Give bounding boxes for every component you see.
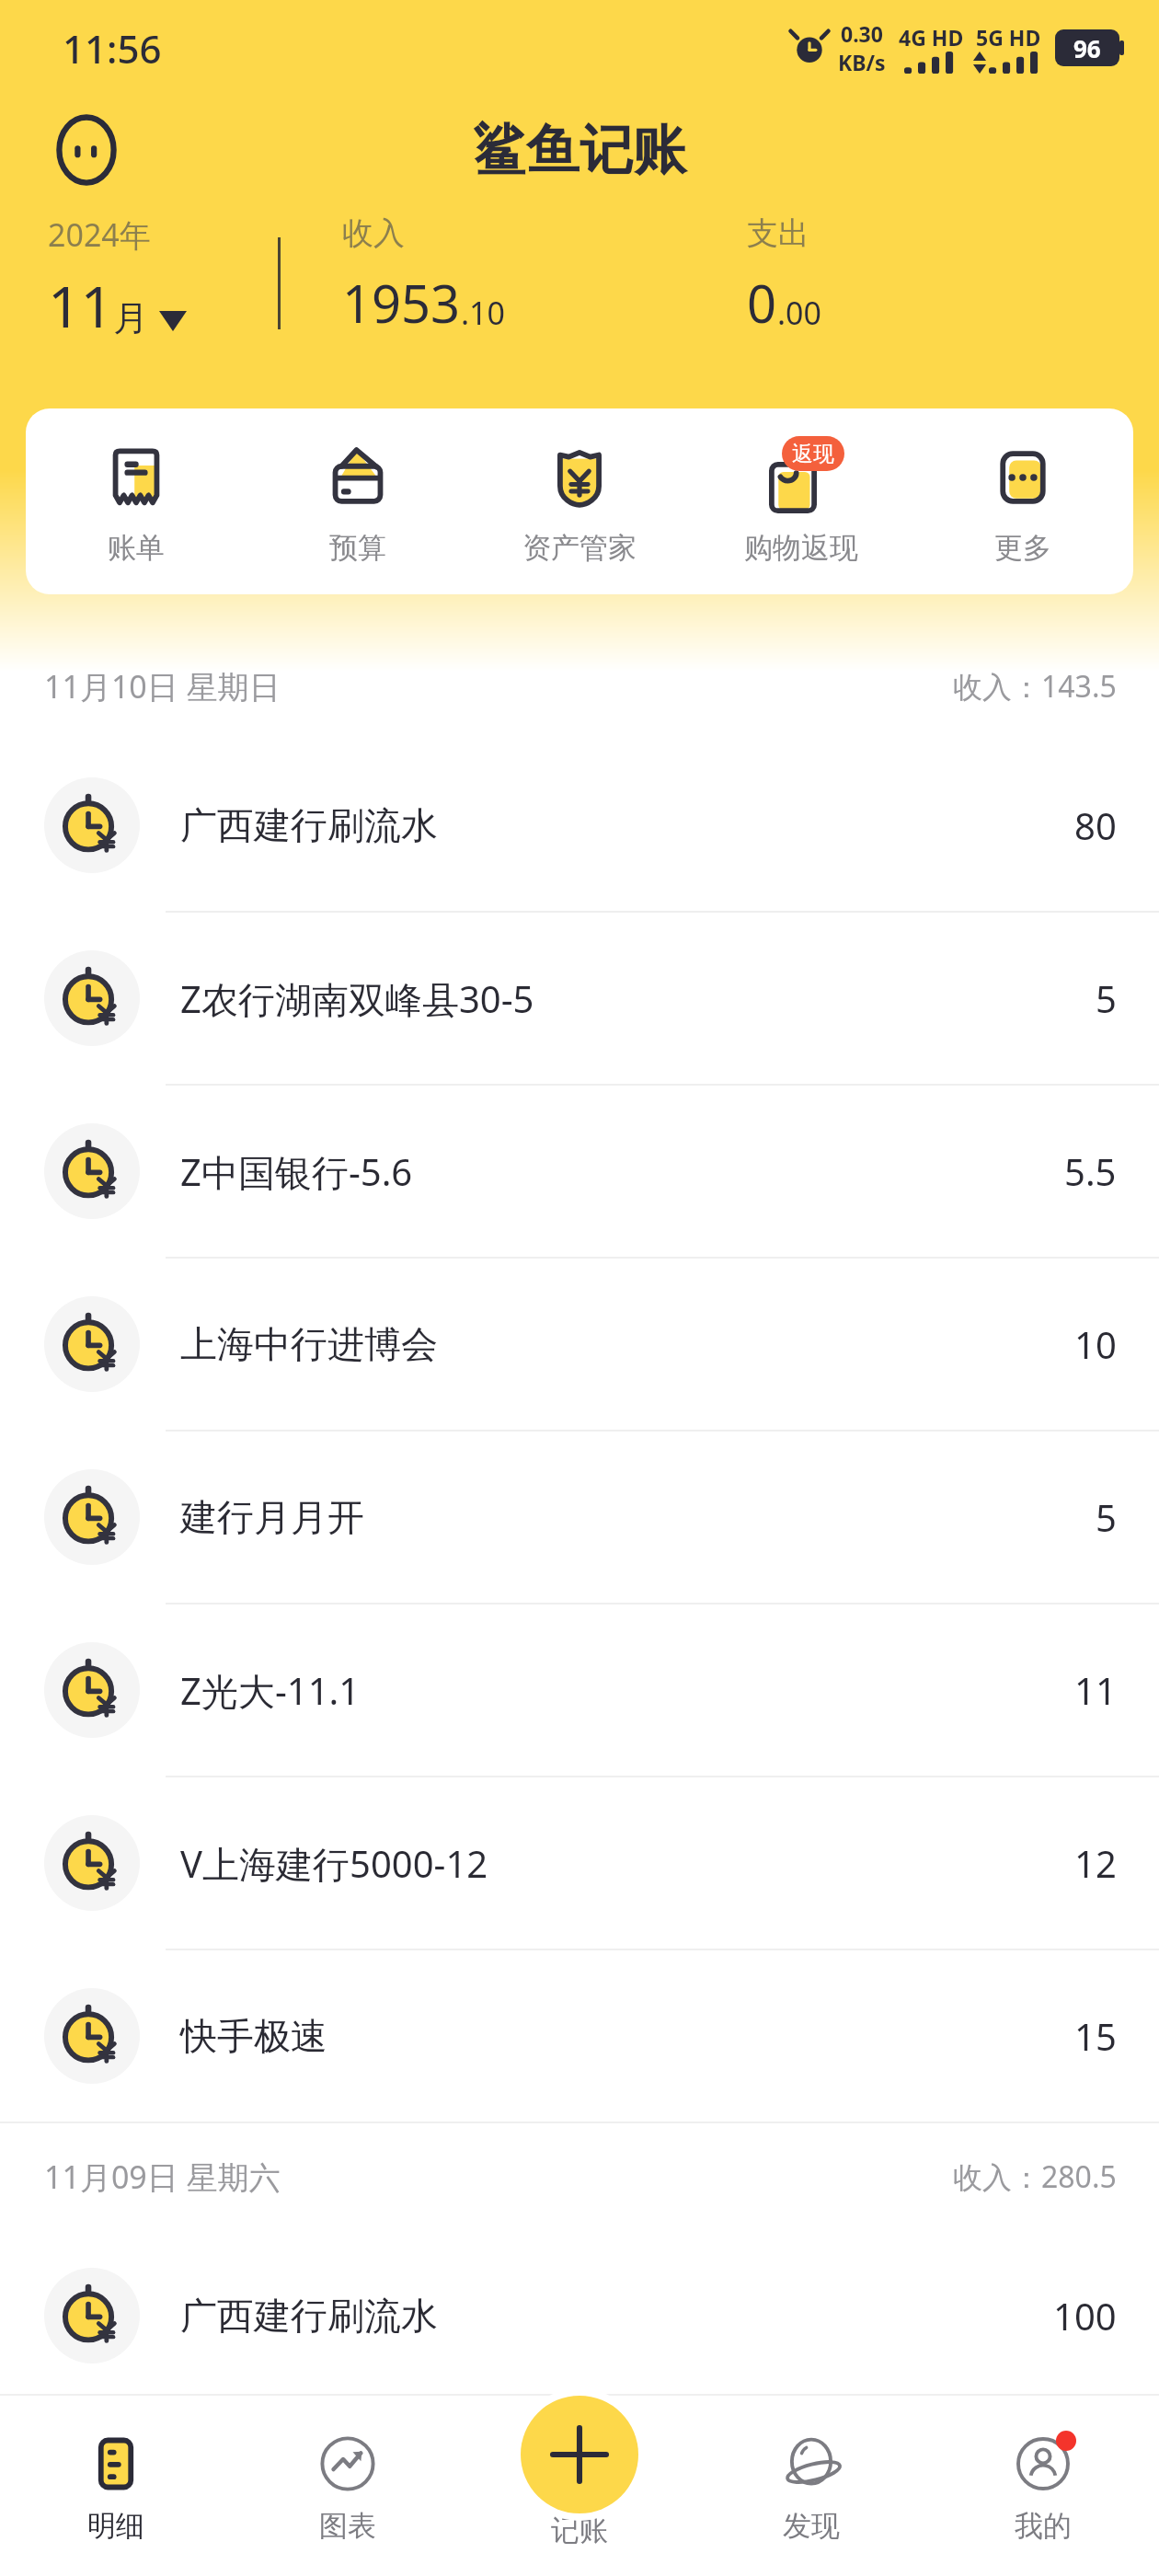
staticText: 建行月月开 xyxy=(180,1494,1096,1540)
staticText: .00 xyxy=(777,292,822,334)
staticText: 上海中行进博会 xyxy=(180,1321,1074,1367)
staticText: 收入：280.5 xyxy=(953,2156,1117,2197)
staticText: 5 xyxy=(1096,1492,1117,1542)
staticText: 记账 xyxy=(551,2513,608,2548)
staticText: 4G HD xyxy=(899,23,964,52)
button[interactable]: 预算 xyxy=(247,408,468,594)
staticText: 2024年 xyxy=(48,213,151,256)
staticText: 11月10日 星期日 xyxy=(44,665,281,707)
button[interactable]: 广西建行刷流水 xyxy=(0,740,1159,911)
staticText: 80 xyxy=(1074,800,1117,850)
staticText: 鲨鱼记账 xyxy=(473,117,686,184)
button[interactable]: 上海中行进博会 xyxy=(0,1259,1159,1430)
staticText: Z农行湖南双峰县30-5 xyxy=(180,973,1096,1024)
staticText: 支出 xyxy=(747,213,809,253)
staticText: 广西建行刷流水 xyxy=(180,2293,1053,2339)
staticText: 资产管家 xyxy=(522,530,637,566)
staticText: 100 xyxy=(1053,2291,1117,2340)
button[interactable]: 快手极速 xyxy=(0,1950,1159,2122)
staticText: 11月09日 星期六 xyxy=(44,2156,281,2198)
staticText: 我的 xyxy=(1015,2508,1072,2544)
staticText: KB/s xyxy=(838,48,886,76)
button[interactable]: Z光大-11.1 xyxy=(0,1604,1159,1776)
staticText: Z光大-11.1 xyxy=(180,1665,1074,1716)
button[interactable]: 建行月月开 xyxy=(0,1432,1159,1603)
staticText: 更多 xyxy=(994,530,1051,566)
staticText: 广西建行刷流水 xyxy=(180,802,1074,848)
staticText: 96 xyxy=(1073,32,1101,64)
button[interactable]: 记账 xyxy=(464,2424,695,2548)
button[interactable]: Profile xyxy=(48,111,125,189)
staticText: 11:56 xyxy=(63,22,162,75)
staticText: 明细 xyxy=(87,2508,144,2544)
staticText: 预算 xyxy=(329,530,386,566)
staticText: 收入：143.5 xyxy=(953,666,1117,707)
staticText: 1953 xyxy=(342,268,461,338)
button[interactable]: 账单 xyxy=(26,408,247,594)
button[interactable]: 2024年 xyxy=(48,213,187,344)
button[interactable]: Z中国银行-5.6 xyxy=(0,1086,1159,1257)
button[interactable]: 返现 xyxy=(690,408,912,594)
staticText: 11 xyxy=(48,267,113,344)
staticText: .10 xyxy=(461,292,506,334)
button[interactable]: V上海建行5000-12 xyxy=(0,1777,1159,1949)
staticText: 15 xyxy=(1074,2011,1117,2061)
staticText: 账单 xyxy=(108,530,165,566)
button[interactable]: 我的 xyxy=(927,2396,1159,2576)
staticText: 收入 xyxy=(342,213,405,253)
button[interactable]: 发现 xyxy=(695,2396,927,2576)
staticText: 返现 xyxy=(792,441,834,467)
staticText: 图表 xyxy=(319,2508,376,2544)
staticText: 0.30 xyxy=(841,19,883,48)
button[interactable]: Add record xyxy=(521,2396,638,2513)
staticText: Z中国银行-5.6 xyxy=(180,1146,1064,1197)
button[interactable]: 更多 xyxy=(912,408,1133,594)
staticText: 快手极速 xyxy=(180,2013,1074,2059)
button[interactable]: Z农行湖南双峰县30-5 xyxy=(0,913,1159,1084)
staticText: 月 xyxy=(113,296,148,340)
staticText: 5 xyxy=(1096,973,1117,1023)
button[interactable]: 明细 xyxy=(0,2396,232,2576)
staticText: V上海建行5000-12 xyxy=(180,1838,1074,1889)
staticText: 5G HD xyxy=(976,23,1041,52)
staticText: 发现 xyxy=(783,2508,840,2544)
staticText: 11 xyxy=(1074,1665,1117,1715)
staticText: 5.5 xyxy=(1064,1146,1117,1196)
button[interactable]: 资产管家 xyxy=(468,408,690,594)
staticText: 12 xyxy=(1074,1838,1117,1888)
staticText: 10 xyxy=(1074,1319,1117,1369)
button[interactable]: 广西建行刷流水 xyxy=(0,2230,1159,2401)
button[interactable]: 图表 xyxy=(232,2396,464,2576)
staticText: 购物返现 xyxy=(744,530,858,566)
staticText: 0 xyxy=(747,268,777,338)
